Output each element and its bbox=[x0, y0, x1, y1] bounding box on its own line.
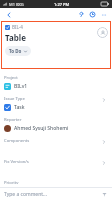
button[interactable]: Assignee bbox=[97, 27, 108, 38]
button[interactable]: To Do bbox=[5, 46, 31, 56]
button[interactable]: Priority bbox=[0, 177, 112, 187]
button[interactable]: Log work bbox=[88, 10, 97, 19]
staticText: Project bbox=[4, 75, 18, 81]
staticText: Issue Type bbox=[4, 96, 25, 102]
button[interactable]: Project bbox=[0, 72, 112, 93]
staticText: 1:27 PM bbox=[54, 2, 70, 7]
button[interactable]: Attach bbox=[77, 10, 86, 19]
button[interactable]: Type a comment... bbox=[0, 188, 112, 200]
staticText: Task bbox=[14, 104, 25, 111]
staticText: Reporter bbox=[4, 117, 22, 123]
staticText: BILv1 bbox=[14, 83, 28, 90]
staticText: Components bbox=[4, 138, 30, 144]
staticText: Fix Version/s bbox=[4, 159, 29, 165]
staticText: Type a comment... bbox=[4, 191, 48, 198]
button[interactable]: Fix Version/s bbox=[0, 156, 112, 177]
button[interactable]: Back bbox=[4, 10, 13, 19]
staticText: Table bbox=[5, 32, 26, 43]
button[interactable]: Send comment bbox=[100, 190, 108, 198]
button[interactable]: Reporter bbox=[0, 114, 112, 135]
button[interactable]: Issue Type bbox=[0, 93, 112, 114]
button[interactable]: Components bbox=[0, 135, 112, 156]
staticText: Priority bbox=[4, 180, 19, 184]
button[interactable]: BIL-4 bbox=[1, 21, 111, 69]
button[interactable]: More options bbox=[99, 10, 108, 19]
staticText: M1 BXG bbox=[9, 2, 24, 7]
staticText: Ahmed Sysuji Shohemi bbox=[14, 125, 69, 132]
staticText: To Do bbox=[9, 48, 22, 54]
staticText: BIL-4 bbox=[12, 24, 23, 30]
